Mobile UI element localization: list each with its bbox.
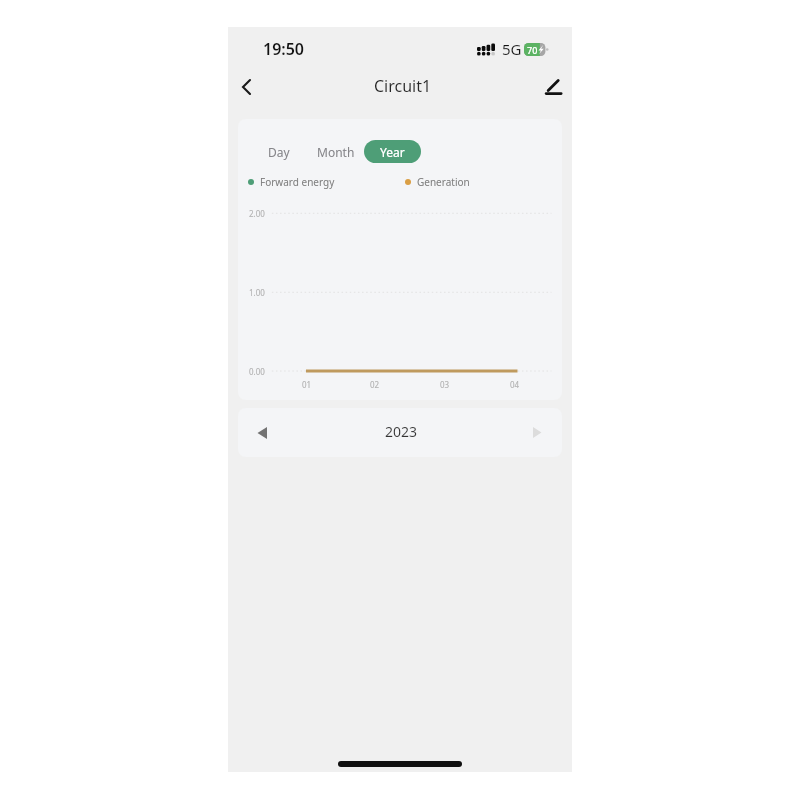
staticText: 1.00 (249, 287, 265, 298)
staticText: Generation (417, 175, 470, 189)
staticText: 2023 (385, 422, 418, 441)
staticText: 0.00 (249, 366, 265, 377)
staticText: 04 (510, 379, 520, 390)
staticText: Month (317, 144, 355, 160)
button[interactable]: Back (228, 69, 264, 105)
staticText: 01 (302, 379, 312, 390)
staticText: 19:50 (263, 38, 305, 60)
staticText: Circuit1 (374, 75, 432, 97)
button[interactable]: Day (264, 140, 294, 164)
staticText: Forward energy (260, 175, 335, 189)
staticText: 2.00 (249, 208, 265, 219)
staticText: 5G (502, 39, 522, 59)
button[interactable]: Next year (523, 418, 552, 447)
staticText: Day (268, 144, 290, 160)
staticText: 70 (527, 44, 538, 56)
button[interactable]: Previous year (247, 418, 276, 447)
staticText: Year (380, 144, 405, 160)
staticText: 02 (370, 379, 380, 390)
button[interactable]: Month (313, 140, 359, 164)
button[interactable]: Edit (535, 69, 571, 105)
button[interactable]: Year (364, 140, 421, 163)
staticText: 03 (440, 379, 450, 390)
